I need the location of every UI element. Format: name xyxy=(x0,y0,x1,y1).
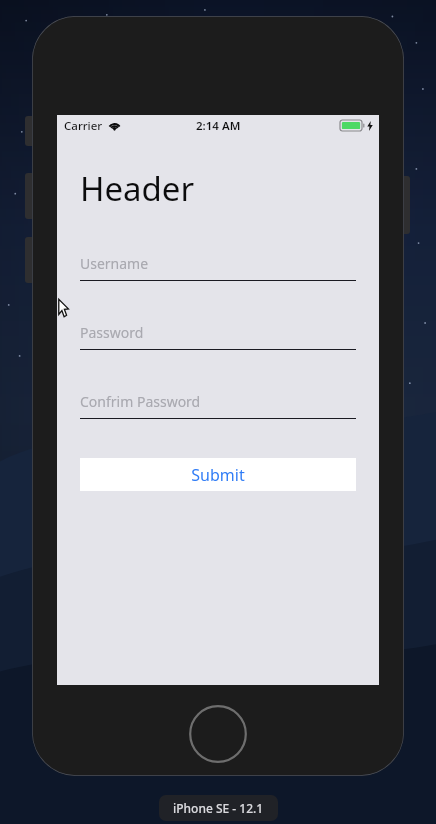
staticText: Password xyxy=(80,323,144,342)
button[interactable]: Submit xyxy=(80,458,356,491)
staticText: Submit xyxy=(191,464,245,486)
staticText: 2:14 AM xyxy=(196,118,241,134)
staticText: Username xyxy=(80,254,149,273)
button[interactable]: Username xyxy=(80,254,356,281)
staticText: Confrim Password xyxy=(80,392,201,411)
staticText: Header xyxy=(80,166,195,211)
staticText: Carrier xyxy=(64,118,103,134)
button[interactable]: Home xyxy=(189,705,247,763)
button[interactable]: Password xyxy=(80,323,356,350)
button[interactable]: Confrim Password xyxy=(80,392,356,419)
staticText: iPhone SE - 12.1 xyxy=(173,800,264,816)
